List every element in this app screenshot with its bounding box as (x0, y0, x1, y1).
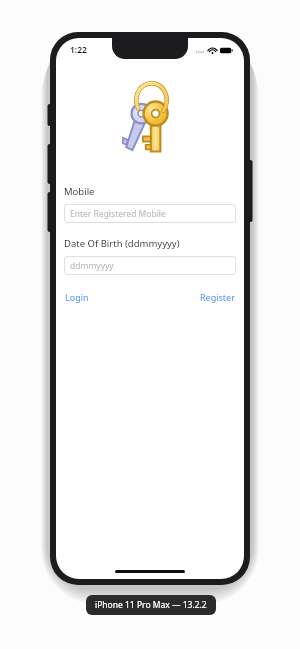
staticText: Mobile (64, 185, 95, 198)
staticText: 1:22 (70, 44, 87, 56)
other: Keys logo (122, 79, 178, 155)
staticText: ddmmyyyy (70, 260, 114, 272)
button[interactable]: Register (199, 289, 236, 305)
button[interactable]: Login (64, 289, 90, 305)
staticText: Enter Registered Mobile (70, 208, 166, 220)
staticText: Register (200, 291, 235, 303)
button[interactable]: ddmmyyyy (64, 256, 236, 275)
staticText: Login (65, 291, 89, 303)
staticText: Date Of Birth (ddmmyyyy) (64, 237, 180, 250)
staticText: iPhone 11 Pro Max — 13.2.2 (95, 599, 207, 611)
button[interactable]: Enter Registered Mobile (64, 204, 236, 223)
